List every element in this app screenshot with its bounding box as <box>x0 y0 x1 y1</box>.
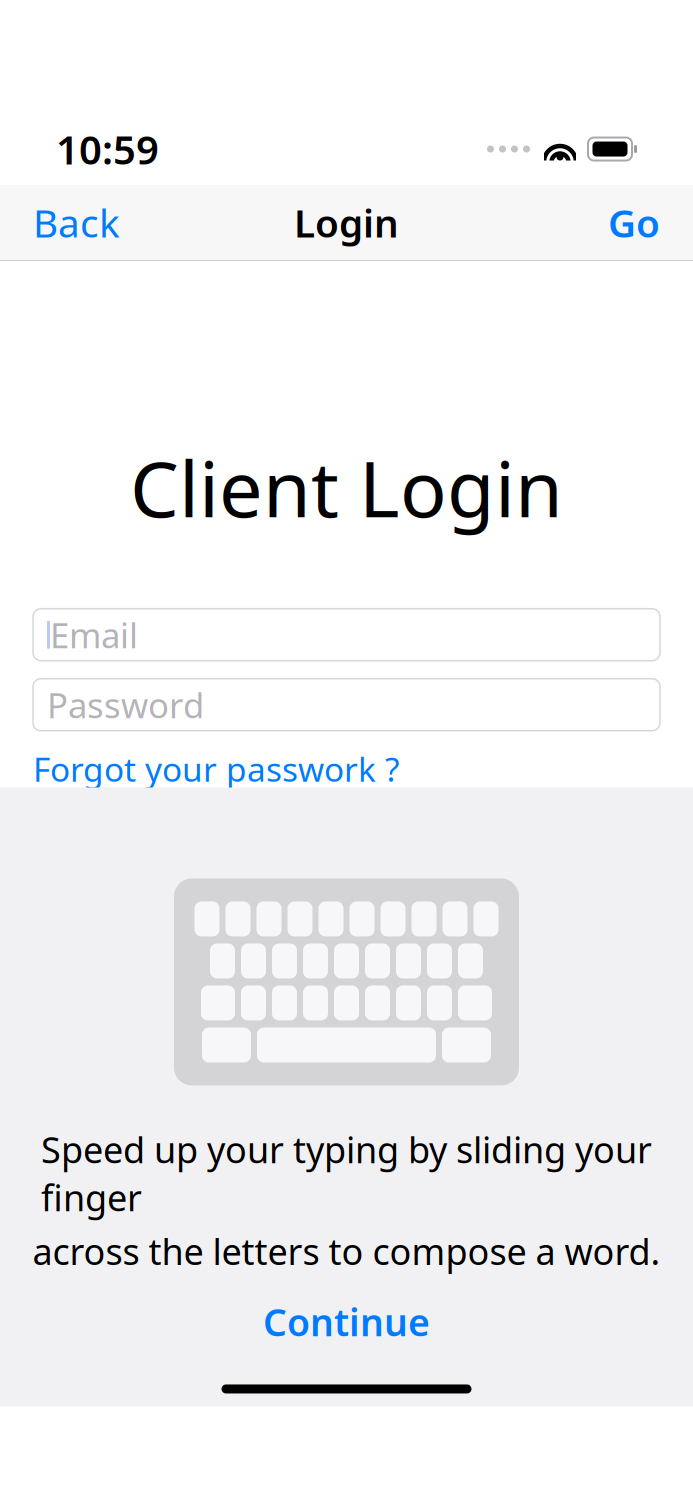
button[interactable]: Forgot your passwork ? <box>33 739 399 799</box>
staticText: Client Login <box>130 436 563 539</box>
staticText: across the letters to compose a word. <box>32 1227 660 1275</box>
staticText: 10:59 <box>56 122 159 176</box>
staticText: Go <box>608 197 660 248</box>
staticText: Continue <box>263 1297 430 1346</box>
staticText: Login <box>294 197 399 248</box>
button[interactable]: Back <box>23 185 130 260</box>
button[interactable]: Continue <box>233 1283 460 1360</box>
staticText: Email <box>50 612 138 658</box>
staticText: Speed up your typing by sliding your fin… <box>41 1125 652 1221</box>
staticText: Password <box>47 682 204 728</box>
staticText: Forgot your passwork ? <box>33 747 399 791</box>
staticText: Back <box>33 197 120 248</box>
button[interactable]: Go <box>598 185 670 260</box>
